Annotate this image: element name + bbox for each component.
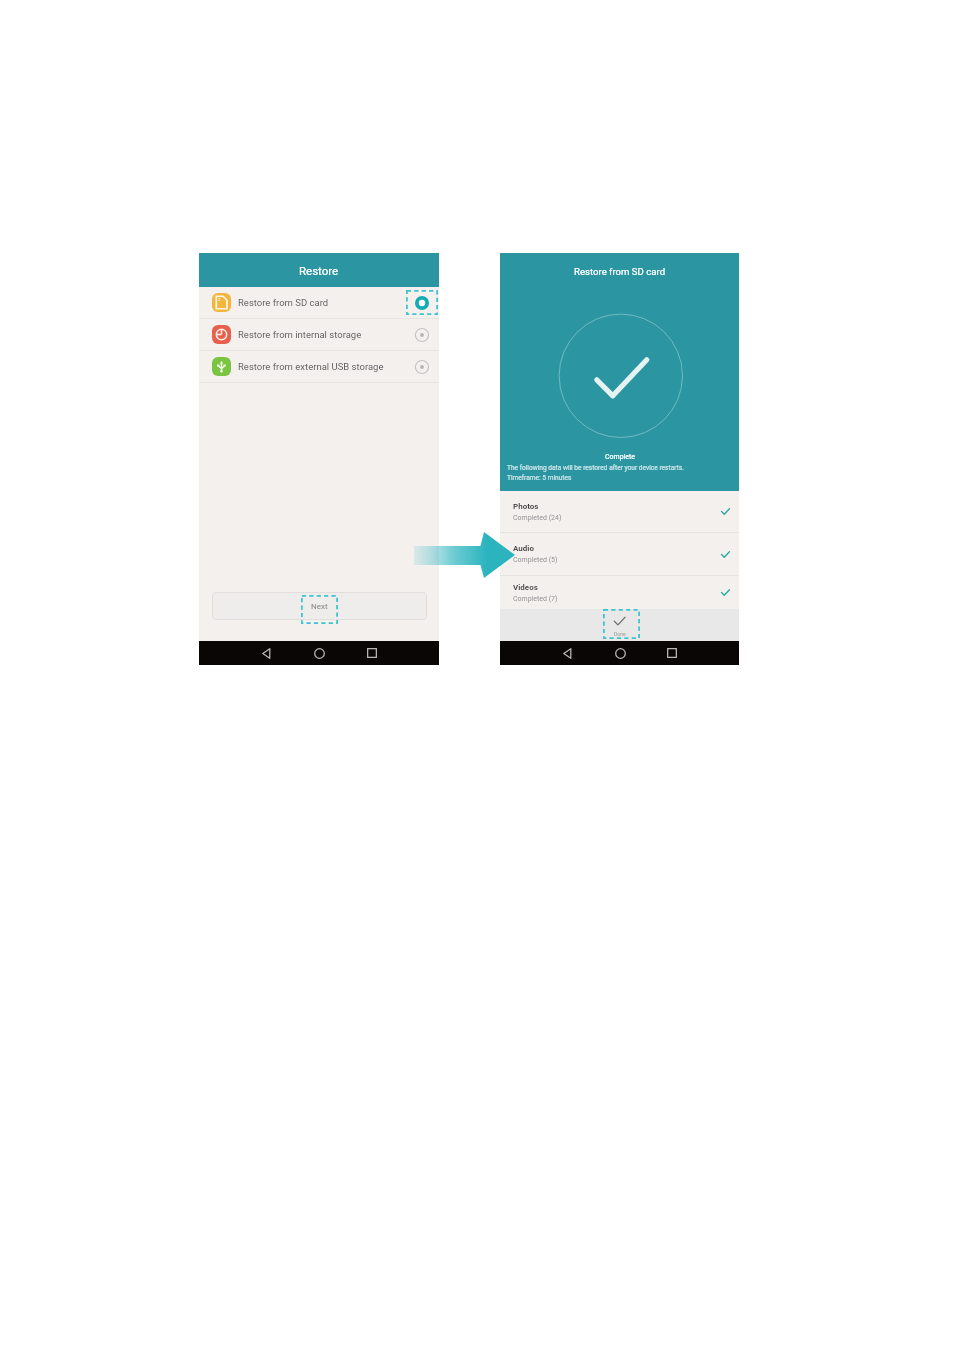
button[interactable]: Back [255,642,277,664]
button[interactable]: Home [308,642,330,664]
button[interactable]: Restore from internal storage [199,319,439,350]
button[interactable]: Next [212,592,427,620]
staticText: Restore from SD card [238,297,329,308]
staticText: Complete [507,453,733,461]
button[interactable]: Recents [661,642,683,664]
button[interactable]: Recents [361,642,383,664]
staticText: The following data will be restored afte… [507,464,684,482]
staticText: Photos [513,502,539,511]
staticText: Videos [513,583,538,592]
button[interactable]: Audio [500,533,739,575]
button[interactable]: Home [609,642,631,664]
staticText: Completed (5) [513,556,558,564]
staticText: Next [311,602,328,611]
button[interactable]: Photos [500,491,739,532]
staticText: Restore [299,264,339,277]
button[interactable]: Back [556,642,578,664]
staticText: Completed (7) [513,595,558,603]
staticText: Restore from external USB storage [238,361,384,372]
staticText: Restore from SD card [574,266,666,277]
button[interactable]: Restore from external USB storage [199,351,439,382]
staticText: Audio [513,544,534,553]
button[interactable]: Done [601,610,638,640]
button[interactable]: Videos [500,576,739,609]
staticText: Restore from internal storage [238,329,362,340]
button[interactable]: Restore from SD card [199,287,439,318]
staticText: Done [614,631,626,637]
staticText: Completed (24) [513,514,562,522]
